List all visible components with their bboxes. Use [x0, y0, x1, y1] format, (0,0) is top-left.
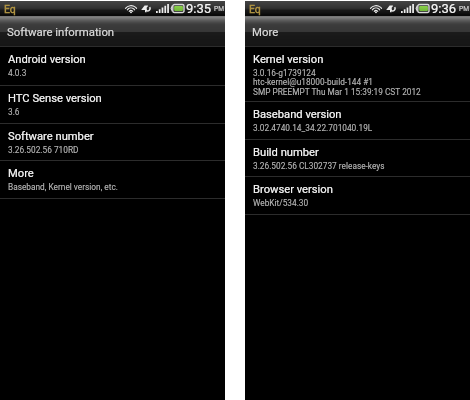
staticText: Kernel version [253, 53, 324, 66]
button[interactable]: Baseband version [245, 102, 470, 139]
staticText: 3.6 [8, 107, 20, 117]
button[interactable]: HTC Sense version [0, 86, 225, 123]
staticText: Baseband, Kernel version, etc. [8, 182, 118, 192]
button[interactable]: Android version [0, 47, 225, 85]
staticText: PM [214, 5, 224, 13]
staticText: Android version [8, 53, 86, 66]
staticText: More [8, 167, 34, 180]
staticText: WebKit/534.30 [253, 198, 309, 208]
button[interactable]: Software number [0, 124, 225, 160]
button[interactable]: Kernel version [245, 47, 470, 101]
button[interactable]: Browser version [245, 177, 470, 214]
staticText: 3.0.16-g1739124 [253, 68, 316, 78]
staticText: 3.26.502.56 CL302737 release-keys [253, 161, 385, 171]
staticText: Software information [7, 25, 115, 38]
staticText: SMP PREEMPT Thu Mar 1 15:39:19 CST 2012 [253, 87, 421, 97]
staticText: Baseband version [253, 108, 342, 121]
staticText: Eq [249, 3, 261, 15]
staticText: 3.26.502.56 710RD [8, 145, 79, 155]
staticText: 3.02.4740.14_34.22.701040.19L [253, 123, 373, 133]
staticText: 9:36 [431, 1, 457, 16]
button[interactable]: More [0, 161, 225, 198]
staticText: htc-kernel@u18000-build-144 #1 [253, 77, 373, 87]
staticText: 9:35 [186, 1, 212, 16]
staticText: More [252, 25, 279, 38]
staticText: HTC Sense version [8, 92, 102, 105]
staticText: Software number [8, 130, 94, 143]
button[interactable]: Build number [245, 140, 470, 176]
staticText: Browser version [253, 183, 333, 196]
staticText: PM [459, 5, 469, 13]
staticText: Build number [253, 146, 319, 159]
staticText: 4.0.3 [8, 68, 27, 78]
staticText: Eq [4, 3, 16, 15]
